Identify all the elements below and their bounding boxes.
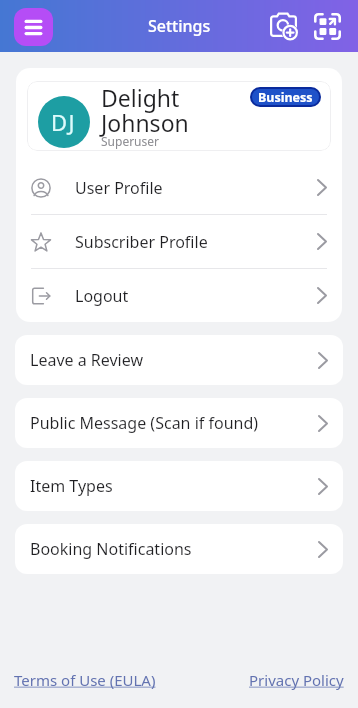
- staticText: Settings: [148, 15, 211, 37]
- staticText: DJ: [51, 107, 77, 137]
- button[interactable]: Terms of Use (EULA): [14, 670, 156, 690]
- button[interactable]: Scan QR code: [314, 13, 341, 40]
- staticText: User Profile: [75, 177, 163, 199]
- staticText: Superuser: [101, 133, 159, 149]
- staticText: Public Message (Scan if found): [30, 412, 259, 434]
- staticText: Subscriber Profile: [75, 231, 208, 253]
- button[interactable]: Leave a Review: [15, 335, 343, 385]
- button[interactable]: Item Types: [15, 461, 343, 511]
- staticText: Booking Notifications: [30, 538, 192, 560]
- button[interactable]: Add photo: [270, 13, 298, 41]
- button[interactable]: Privacy Policy: [249, 670, 344, 690]
- staticText: Business: [258, 89, 313, 105]
- staticText: Item Types: [30, 475, 113, 497]
- staticText: Delight Johnson: [101, 82, 189, 138]
- staticText: Logout: [75, 285, 129, 307]
- button[interactable]: Logout: [16, 269, 342, 322]
- button[interactable]: Booking Notifications: [15, 524, 343, 574]
- staticText: Leave a Review: [30, 349, 144, 371]
- button[interactable]: Business: [252, 89, 319, 105]
- button[interactable]: Menu: [14, 8, 53, 46]
- button[interactable]: User Profile: [16, 161, 342, 214]
- button[interactable]: Subscriber Profile: [16, 215, 342, 268]
- button[interactable]: Public Message (Scan if found): [15, 398, 343, 448]
